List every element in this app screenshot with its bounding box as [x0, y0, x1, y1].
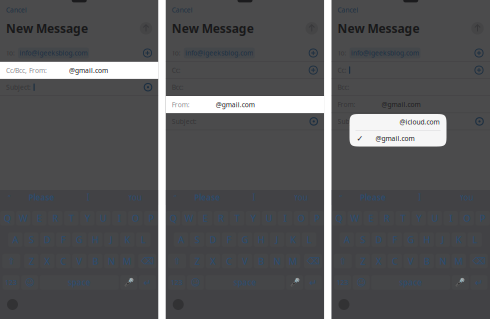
staticText: D — [375, 233, 382, 246]
button[interactable]: @icloud.com — [349, 114, 446, 130]
staticText: S — [194, 233, 199, 246]
staticText: From: — [172, 100, 190, 109]
staticText: I — [87, 192, 90, 203]
staticText: L — [141, 233, 146, 246]
staticText: Cc/Bcc, From: — [6, 66, 47, 75]
staticText: H — [257, 233, 264, 246]
staticText: X — [376, 255, 382, 267]
button[interactable]: Cc/Bcc, From: — [0, 62, 158, 79]
staticText: U — [265, 212, 272, 224]
button[interactable]: Add contact — [142, 48, 152, 58]
staticText: V — [408, 255, 414, 267]
button[interactable]: Notify me — [475, 117, 484, 126]
staticText: ☺ — [356, 277, 366, 288]
staticText: ⌫ — [141, 256, 154, 266]
staticText: To: — [6, 49, 15, 57]
staticText: Z — [29, 255, 34, 267]
staticText: ⌫ — [472, 256, 485, 266]
button[interactable]: Add contact — [474, 65, 484, 75]
staticText: ⌫ — [306, 256, 319, 266]
staticText: ✓ — [356, 134, 363, 143]
staticText: I — [118, 212, 121, 224]
staticText: A — [12, 233, 18, 246]
staticText: N — [108, 255, 115, 267]
staticText: T — [234, 212, 239, 224]
button[interactable]: Add contact — [308, 48, 318, 58]
staticText: 🎤 — [455, 278, 465, 287]
staticText: K — [290, 233, 296, 246]
staticText: P — [148, 212, 154, 224]
staticText: 123 — [5, 278, 17, 287]
button[interactable]: Add contact — [474, 48, 484, 58]
staticText: Subject: — [172, 117, 197, 126]
staticText: J — [275, 233, 278, 246]
staticText: U — [100, 212, 107, 224]
staticText: From: — [172, 100, 190, 109]
button[interactable]: Send — [139, 22, 152, 35]
staticText: Bcc: — [172, 83, 184, 92]
staticText: info@igeeksblog.com — [185, 49, 253, 57]
staticText: “ — [174, 193, 176, 202]
staticText: I — [252, 192, 255, 203]
staticText: C — [226, 255, 232, 267]
staticText: W — [184, 212, 193, 224]
staticText: Z — [194, 255, 199, 267]
staticText: ↵ — [475, 277, 483, 288]
staticText: K — [124, 233, 130, 246]
button[interactable]: Notify me — [143, 83, 152, 92]
button[interactable]: Send — [305, 22, 318, 35]
staticText: New Message — [337, 20, 419, 36]
staticText: Subject: — [6, 83, 31, 92]
staticText: F — [392, 233, 397, 246]
staticText: space — [68, 277, 91, 288]
staticText: ☺ — [190, 277, 200, 288]
staticText: M — [288, 255, 297, 267]
staticText: ↵ — [309, 277, 317, 288]
staticText: E — [202, 212, 207, 224]
staticText: J — [110, 233, 113, 246]
button[interactable]: Add contact — [308, 65, 318, 75]
staticText: New Message — [172, 20, 254, 36]
staticText: N — [439, 255, 446, 267]
staticText: E — [37, 212, 42, 224]
button[interactable]: ✓ — [349, 130, 446, 146]
staticText: R — [52, 212, 58, 224]
staticText: T — [69, 212, 74, 224]
staticText: From: — [337, 100, 355, 109]
staticText: @gmail.com — [381, 100, 420, 109]
staticText: @gmail.com — [69, 66, 108, 75]
staticText: Z — [360, 255, 365, 267]
staticText: A — [178, 233, 184, 246]
button[interactable]: Notify me — [309, 117, 318, 126]
staticText: X — [44, 255, 50, 267]
staticText: W — [350, 212, 359, 224]
staticText: K — [456, 233, 462, 246]
staticText: N — [273, 255, 280, 267]
staticText: Q — [4, 212, 11, 224]
staticText: @icloud.com — [399, 118, 439, 126]
staticText: A — [344, 233, 350, 246]
button[interactable]: Cancel — [337, 5, 358, 14]
button[interactable]: Cancel — [172, 5, 193, 14]
staticText: O — [297, 212, 304, 224]
staticText: F — [226, 233, 231, 246]
staticText: ☺ — [25, 277, 35, 288]
staticText: Please — [28, 192, 54, 203]
button[interactable]: Send — [471, 22, 484, 35]
staticText: O — [463, 212, 470, 224]
staticText: V — [242, 255, 248, 267]
staticText: R — [218, 212, 224, 224]
button[interactable]: Cancel — [6, 5, 27, 14]
staticText: ⇧ — [339, 256, 347, 266]
staticText: O — [132, 212, 139, 224]
staticText: Cancel — [6, 5, 27, 14]
staticText: G — [76, 233, 83, 246]
staticText: U — [431, 212, 438, 224]
staticText: I — [283, 212, 286, 224]
staticText: S — [360, 233, 365, 246]
staticText: R — [384, 212, 390, 224]
staticText: Y — [250, 212, 255, 224]
staticText: I — [449, 212, 452, 224]
button[interactable]: From: — [166, 96, 324, 113]
staticText: F — [61, 233, 66, 246]
